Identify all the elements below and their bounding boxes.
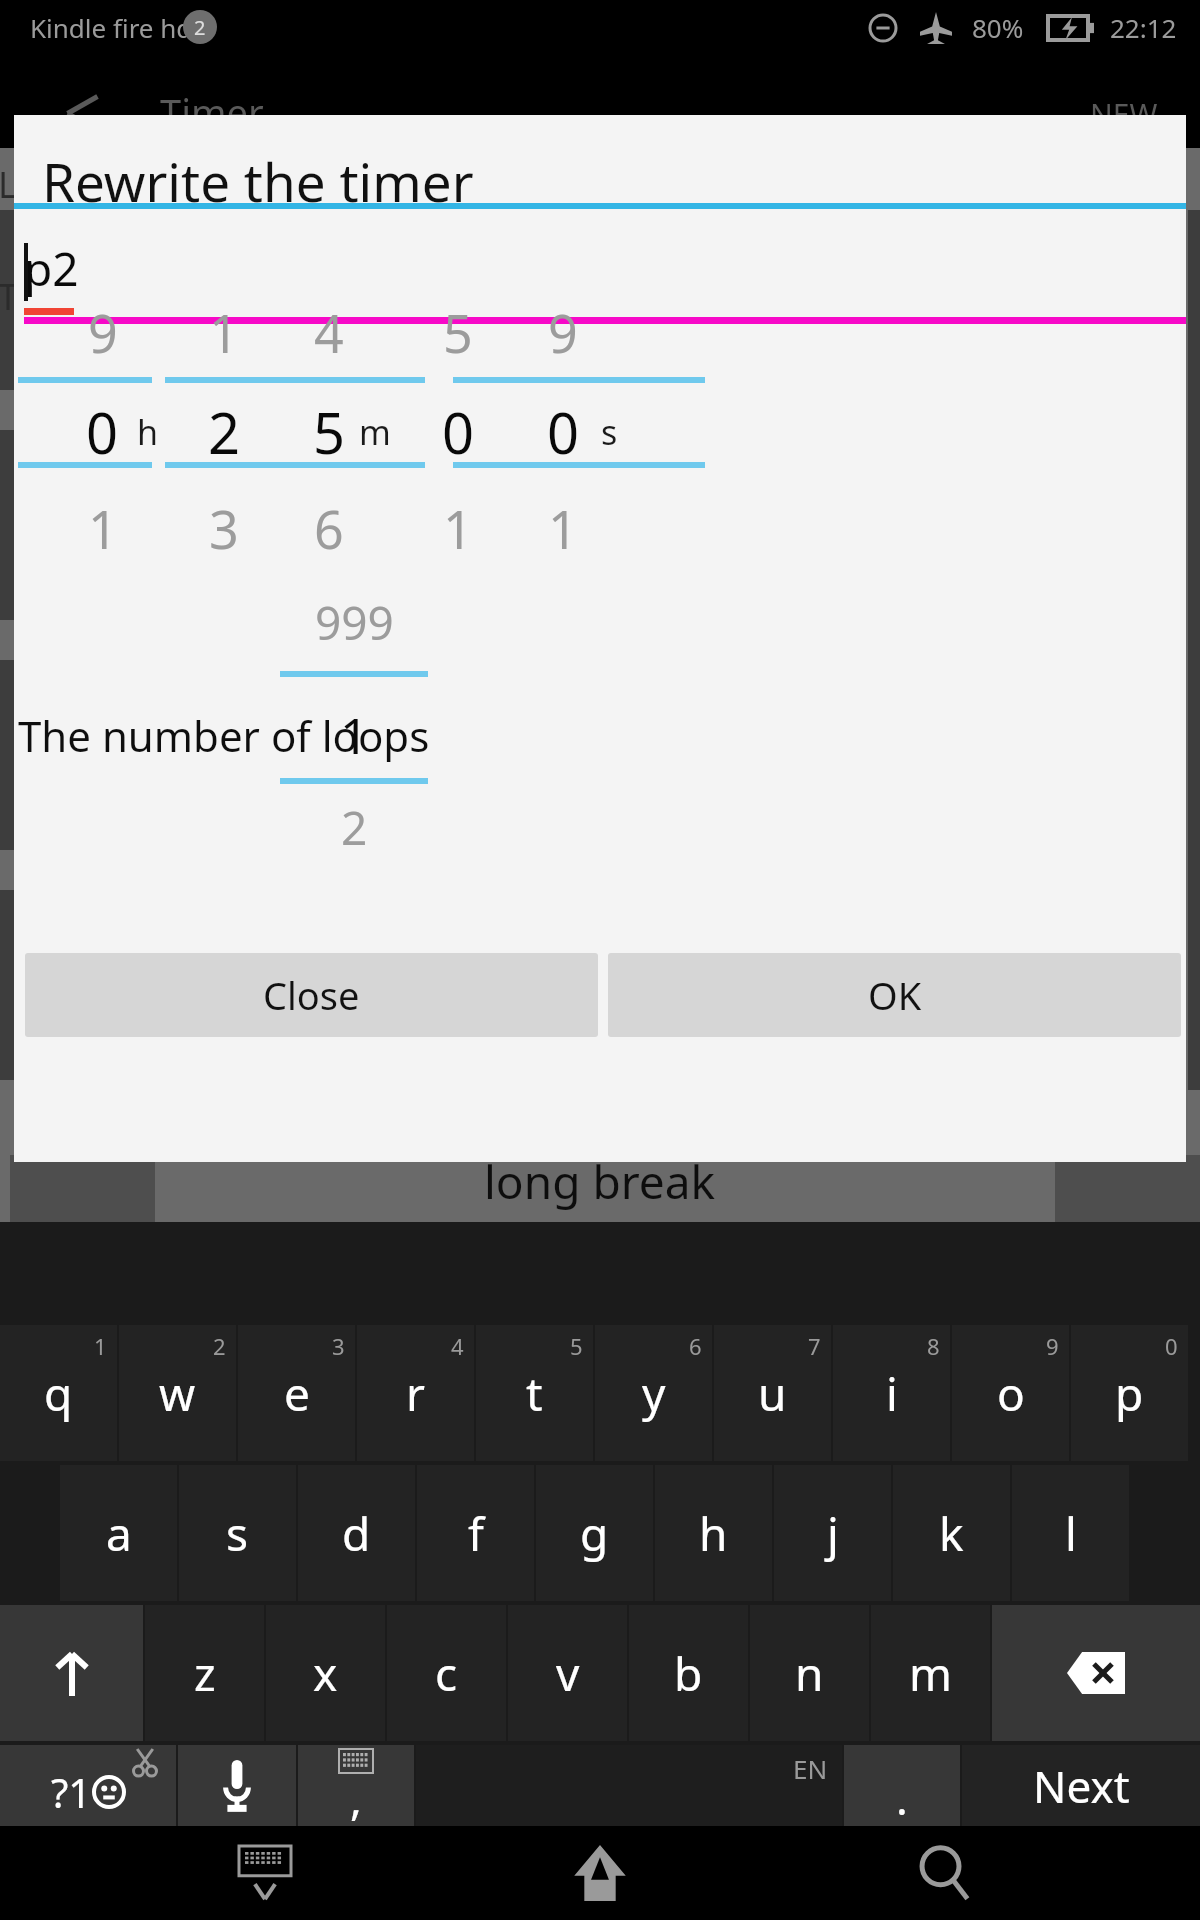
staticText: 22:12 — [1110, 10, 1177, 45]
button[interactable]: Close — [25, 953, 598, 1037]
button[interactable]: n — [750, 1605, 869, 1741]
staticText: p2 — [24, 237, 79, 300]
button[interactable]: g — [536, 1465, 653, 1601]
button[interactable]: 0 — [64, 391, 140, 473]
staticText: 9 — [548, 297, 578, 368]
staticText: ?1 — [51, 1765, 92, 1819]
staticText: k — [939, 1502, 964, 1565]
button[interactable]: 4 — [357, 1325, 474, 1461]
button[interactable]: ?1 — [0, 1745, 176, 1826]
button[interactable]: 9 — [525, 291, 601, 373]
button[interactable]: 1 — [300, 685, 408, 785]
button[interactable]: v — [508, 1605, 627, 1741]
button[interactable]: Next — [962, 1745, 1200, 1826]
staticText: p — [1115, 1362, 1144, 1425]
staticText: 1 — [443, 493, 473, 564]
staticText: 80% — [972, 10, 1024, 45]
staticText: 0 — [86, 394, 119, 470]
button[interactable]: Shift — [0, 1605, 143, 1741]
staticText: o — [997, 1362, 1025, 1425]
button[interactable]: s — [179, 1465, 296, 1601]
staticText: 8 — [927, 1331, 940, 1361]
button[interactable]: x — [266, 1605, 385, 1741]
button[interactable]: k — [893, 1465, 1010, 1601]
button[interactable]: 2 — [186, 391, 262, 473]
button[interactable]: 7 — [714, 1325, 831, 1461]
button[interactable]: 3 — [238, 1325, 355, 1461]
staticText: 1 — [88, 493, 118, 564]
staticText: . — [896, 1768, 908, 1828]
staticText: 4 — [314, 297, 344, 368]
staticText: 6 — [689, 1331, 702, 1361]
button[interactable]: 1 — [65, 487, 141, 569]
button[interactable]: Voice input — [178, 1745, 296, 1826]
button[interactable]: 0 — [525, 391, 601, 473]
staticText: z — [194, 1642, 216, 1705]
button[interactable]: p2 — [14, 209, 1186, 321]
button[interactable]: b — [629, 1605, 748, 1741]
button[interactable]: a — [60, 1465, 177, 1601]
button[interactable]: 0 — [1071, 1325, 1188, 1461]
button[interactable]: 4 — [291, 291, 367, 373]
staticText: m — [909, 1642, 953, 1705]
button[interactable]: 5 — [291, 391, 367, 473]
staticText: i — [886, 1362, 898, 1425]
button[interactable]: Home — [535, 1826, 665, 1920]
staticText: T — [0, 272, 19, 321]
staticText: 6 — [314, 493, 344, 564]
button[interactable]: Search — [880, 1826, 1010, 1920]
button[interactable]: 0 — [420, 391, 496, 473]
staticText: 0 — [442, 394, 475, 470]
staticText: r — [406, 1362, 425, 1425]
staticText: 1 — [94, 1331, 107, 1361]
staticText: u — [758, 1362, 787, 1425]
staticText: 2 — [341, 796, 368, 859]
staticText: j — [827, 1502, 839, 1565]
staticText: Kindle fire hdx — [30, 10, 207, 45]
staticText: m — [359, 409, 391, 455]
button[interactable]: f — [417, 1465, 534, 1601]
staticText: Close — [263, 969, 360, 1021]
button[interactable]: 1 — [0, 1325, 117, 1461]
button[interactable]: OK — [608, 953, 1181, 1037]
button[interactable]: 6 — [291, 487, 367, 569]
button[interactable]: j — [774, 1465, 891, 1601]
button[interactable]: 3 — [186, 487, 262, 569]
staticText: q — [44, 1362, 73, 1425]
button[interactable]: 1 — [525, 487, 601, 569]
staticText: 1 — [548, 493, 578, 564]
staticText: l — [1065, 1502, 1077, 1565]
button[interactable]: 1 — [420, 487, 496, 569]
button[interactable]: m — [871, 1605, 990, 1741]
staticText: h — [137, 409, 159, 455]
staticText: x — [313, 1642, 338, 1705]
button[interactable]: . — [844, 1745, 960, 1826]
button[interactable]: h — [655, 1465, 772, 1601]
button[interactable]: d — [298, 1465, 415, 1601]
button[interactable]: 1 — [186, 291, 262, 373]
staticText: 2 — [194, 14, 206, 41]
button[interactable]: l — [1012, 1465, 1129, 1601]
button[interactable]: Space — [416, 1745, 842, 1826]
staticText: 7 — [808, 1331, 821, 1361]
staticText: 1 — [209, 297, 239, 368]
staticText: h — [699, 1502, 728, 1565]
staticText: long break — [484, 1150, 716, 1213]
button[interactable]: 9 — [65, 291, 141, 373]
button[interactable]: 5 — [476, 1325, 593, 1461]
staticText: d — [342, 1502, 371, 1565]
button[interactable]: 9 — [952, 1325, 1069, 1461]
staticText: OK — [868, 969, 922, 1021]
staticText: s — [601, 409, 618, 455]
button[interactable]: 6 — [595, 1325, 712, 1461]
button[interactable]: 8 — [833, 1325, 950, 1461]
button[interactable]: 2 — [119, 1325, 236, 1461]
button[interactable]: Hide keyboard — [200, 1826, 330, 1920]
button[interactable]: c — [387, 1605, 506, 1741]
button[interactable]: 5 — [420, 291, 496, 373]
staticText: EN — [793, 1751, 828, 1786]
button[interactable]: Backspace — [992, 1605, 1200, 1741]
staticText: v — [556, 1642, 580, 1705]
button[interactable]: , — [298, 1745, 414, 1826]
button[interactable]: z — [145, 1605, 264, 1741]
